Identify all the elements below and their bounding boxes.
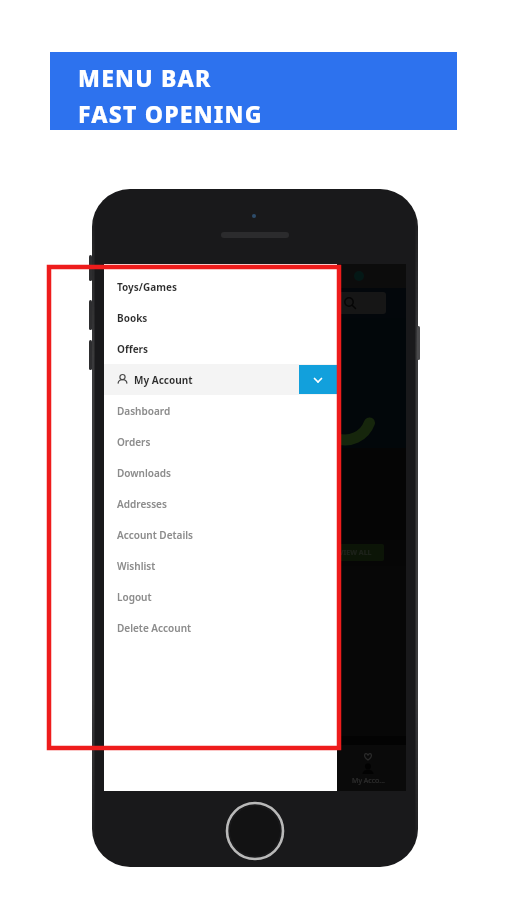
staticText: Account Details [117,528,194,542]
button[interactable]: Toys/Games [104,271,337,302]
button[interactable]: Offers [104,333,337,364]
staticText: Addresses [117,497,167,511]
button[interactable]: Delete Account [104,612,337,643]
button[interactable]: Wishlist [104,550,337,581]
staticText: Dashboard [117,404,171,418]
button[interactable]: My Acco... [330,745,406,791]
button[interactable]: Dashboard [104,395,337,426]
staticText: MENU BAR [78,62,212,93]
staticText: Books [117,311,148,325]
button[interactable]: Expand My Account [299,365,337,394]
staticText: Wishlist [117,559,156,573]
staticText: My Account [134,373,193,387]
button[interactable]: VIEW ALL [326,544,384,561]
other: Search [344,297,356,309]
staticText: Logout [117,590,152,604]
button[interactable]: Orders [104,426,337,457]
button[interactable]: My Account [104,364,337,395]
staticText: FAST OPENING [78,98,263,129]
staticText: VIEW ALL [339,548,372,558]
staticText: Toys/Games [117,280,177,294]
button[interactable]: Logout [104,581,337,612]
button[interactable]: Books [104,302,337,333]
button[interactable]: Account Details [104,519,337,550]
other: Home [226,802,284,860]
staticText: My Acco... [352,776,385,786]
staticText: Orders [117,435,151,449]
button[interactable]: Addresses [104,488,337,519]
staticText: Delete Account [117,621,192,635]
button[interactable]: Downloads [104,457,337,488]
staticText: Downloads [117,466,172,480]
staticText: Offers [117,342,149,356]
